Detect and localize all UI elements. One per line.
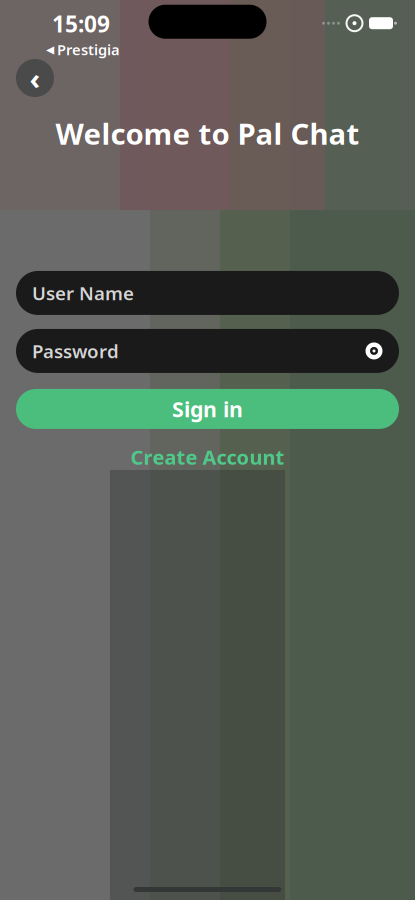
button[interactable]: Sign in xyxy=(16,389,399,429)
staticText: Create Account xyxy=(130,444,284,470)
button[interactable]: Create Account xyxy=(16,443,399,471)
button[interactable]: Password xyxy=(16,329,399,373)
staticText: Prestigia xyxy=(57,40,120,59)
staticText: Password xyxy=(32,339,119,363)
staticText: 15:09 xyxy=(52,9,110,39)
staticText: User Name xyxy=(32,281,134,305)
staticText: Sign in xyxy=(172,395,243,423)
button[interactable]: Back xyxy=(13,56,57,100)
button[interactable]: User Name xyxy=(16,271,399,315)
staticText: Welcome to Pal Chat xyxy=(55,114,359,153)
staticText: ‹ xyxy=(29,58,40,97)
staticText: ◀ xyxy=(46,43,54,56)
